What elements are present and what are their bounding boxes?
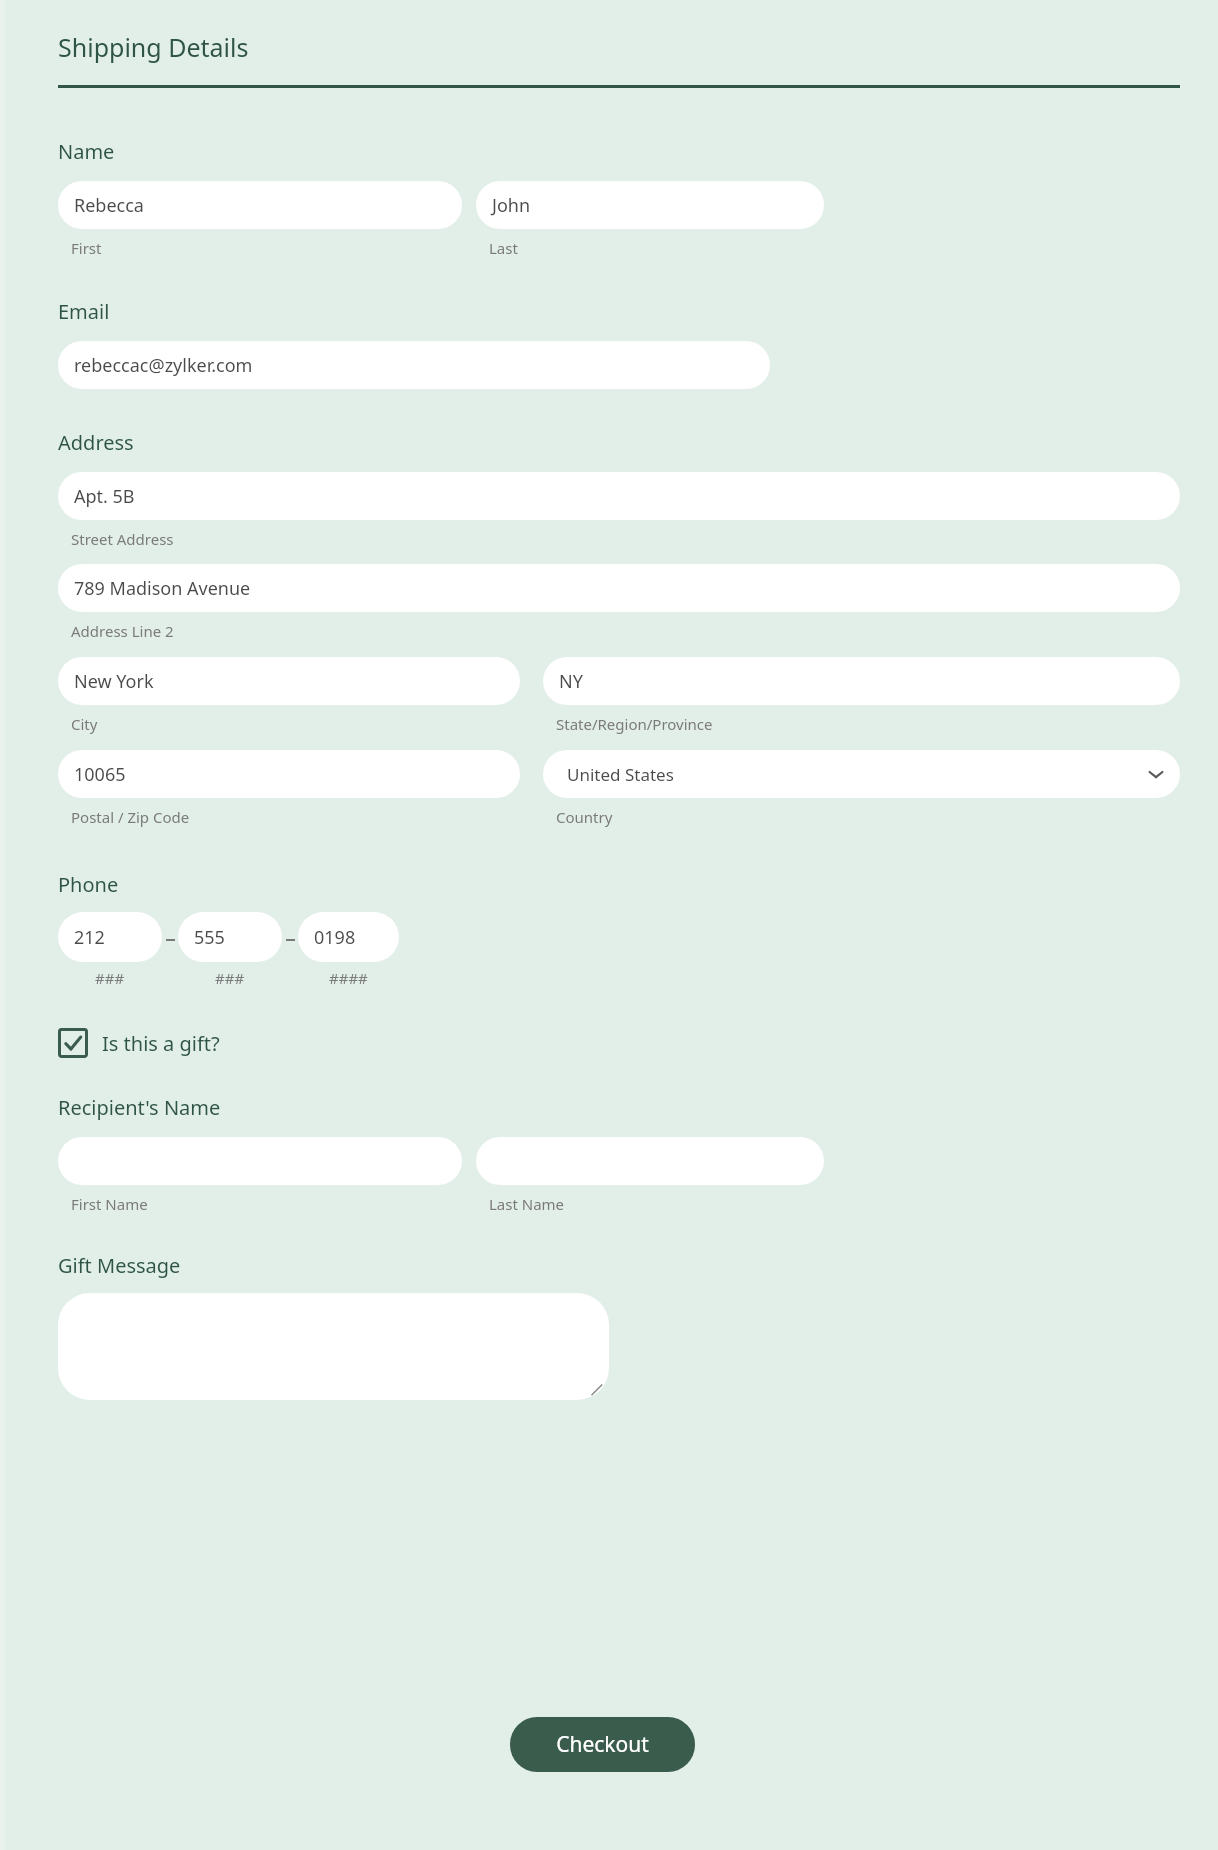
button[interactable]: NY bbox=[543, 657, 1180, 705]
staticText: Recipient's Name bbox=[58, 1094, 221, 1121]
button[interactable]: Checkout bbox=[510, 1717, 695, 1772]
staticText: New York bbox=[74, 669, 154, 694]
staticText: 555 bbox=[194, 925, 225, 950]
button[interactable] bbox=[58, 1293, 609, 1400]
staticText: #### bbox=[329, 968, 368, 988]
staticText: 0198 bbox=[314, 925, 356, 950]
staticText: Country bbox=[556, 807, 613, 827]
staticText: Gift Message bbox=[58, 1252, 181, 1279]
button[interactable] bbox=[476, 1137, 824, 1185]
staticText: John bbox=[492, 193, 531, 218]
staticText: NY bbox=[559, 669, 583, 694]
staticText: Shipping Details bbox=[58, 30, 249, 64]
staticText: Apt. 5B bbox=[74, 484, 135, 509]
staticText: 10065 bbox=[74, 762, 126, 787]
button[interactable]: New York bbox=[58, 657, 520, 705]
staticText: Postal / Zip Code bbox=[71, 807, 190, 827]
button[interactable]: 10065 bbox=[58, 750, 520, 798]
staticText: Address bbox=[58, 429, 134, 456]
staticText: Email bbox=[58, 298, 110, 325]
staticText: Phone bbox=[58, 871, 119, 898]
staticText: Name bbox=[58, 138, 115, 165]
staticText: Checkout bbox=[556, 1730, 649, 1759]
staticText: 789 Madison Avenue bbox=[74, 576, 251, 601]
staticText: City bbox=[71, 714, 98, 734]
button[interactable] bbox=[58, 1137, 462, 1185]
staticText: Is this a gift? bbox=[102, 1030, 220, 1057]
staticText: First Name bbox=[71, 1194, 148, 1214]
staticText: State/Region/Province bbox=[556, 714, 713, 734]
staticText: First bbox=[71, 238, 102, 258]
button[interactable]: United States bbox=[543, 750, 1180, 798]
staticText: ### bbox=[215, 968, 245, 988]
staticText: rebeccac@zylker.com bbox=[74, 353, 253, 378]
staticText: Street Address bbox=[71, 529, 174, 549]
staticText: Last Name bbox=[489, 1194, 565, 1214]
button[interactable]: 0198 bbox=[298, 912, 399, 962]
staticText: Last bbox=[489, 238, 518, 258]
staticText: United States bbox=[567, 763, 674, 786]
button[interactable]: 789 Madison Avenue bbox=[58, 564, 1180, 612]
button[interactable]: Is this a gift? bbox=[58, 1024, 220, 1062]
button[interactable]: 212 bbox=[58, 912, 162, 962]
button[interactable]: 555 bbox=[178, 912, 282, 962]
button[interactable]: Apt. 5B bbox=[58, 472, 1180, 520]
button[interactable]: Rebecca bbox=[58, 181, 462, 229]
staticText: ### bbox=[95, 968, 125, 988]
other: Open country list bbox=[1146, 764, 1166, 784]
staticText: Address Line 2 bbox=[71, 621, 174, 641]
button[interactable]: rebeccac@zylker.com bbox=[58, 341, 770, 389]
button[interactable]: John bbox=[476, 181, 824, 229]
staticText: 212 bbox=[74, 925, 105, 950]
staticText: Rebecca bbox=[74, 193, 144, 218]
